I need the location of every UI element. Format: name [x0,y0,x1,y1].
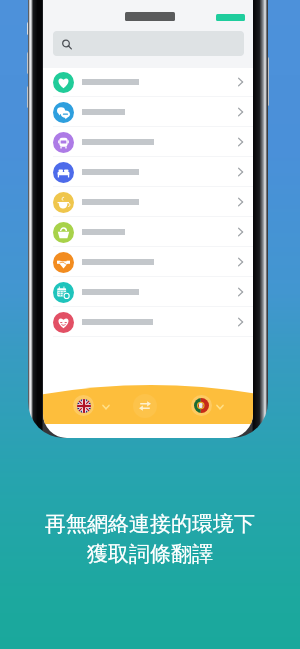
button[interactable]: Target language Portuguese [191,395,212,416]
button[interactable] [43,247,253,277]
button[interactable] [43,157,253,187]
button[interactable] [43,67,253,97]
button[interactable] [43,127,253,157]
button[interactable]: Source language English [73,395,94,416]
button[interactable] [43,307,253,337]
button[interactable] [43,277,253,307]
button[interactable]: Search [53,31,244,56]
button[interactable] [43,97,253,127]
button[interactable]: Swap languages [133,394,157,418]
button[interactable] [43,187,253,217]
button[interactable] [43,217,253,247]
staticText: 再無網絡連接的環境下 獲取詞條翻譯 [0,511,300,567]
